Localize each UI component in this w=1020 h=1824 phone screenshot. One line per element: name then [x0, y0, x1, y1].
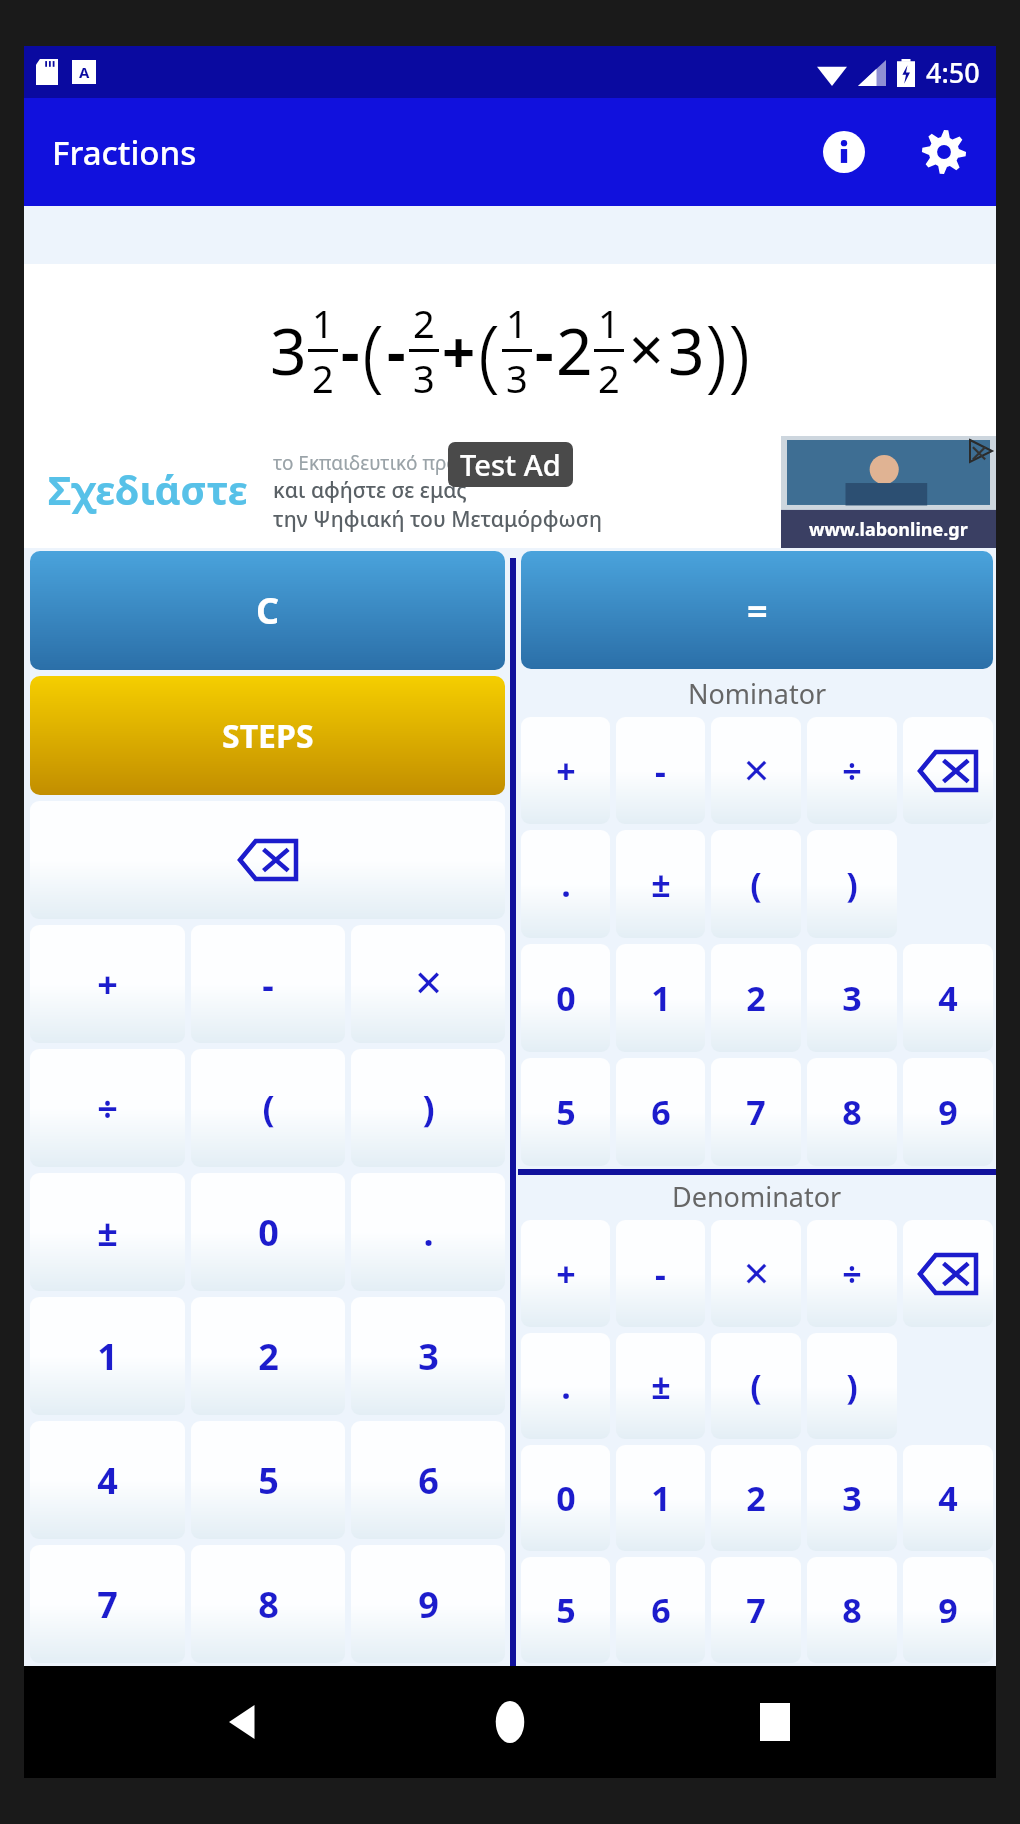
button[interactable]: Info [816, 124, 872, 180]
staticText: Denominator [672, 1178, 842, 1215]
button[interactable]: ÷ [30, 1049, 185, 1167]
staticText: C [256, 586, 280, 635]
button[interactable]: ( [711, 830, 801, 938]
button[interactable]: 1 [616, 1445, 705, 1551]
button[interactable]: 6 [351, 1421, 505, 1539]
button[interactable]: 0 [191, 1173, 345, 1291]
staticText: 5 [556, 1089, 576, 1135]
button[interactable]: 3 [807, 944, 897, 1052]
button[interactable]: 5 [191, 1421, 345, 1539]
button[interactable]: 1 [30, 1297, 185, 1415]
button[interactable]: 9 [351, 1545, 505, 1663]
button[interactable]: . [351, 1173, 505, 1291]
button[interactable]: ± [616, 1333, 705, 1439]
staticText: 2 [413, 297, 435, 349]
staticText: = [747, 586, 768, 635]
staticText: 9 [938, 1587, 958, 1633]
staticText: 7 [746, 1587, 766, 1633]
button[interactable]: 8 [807, 1557, 897, 1663]
button[interactable]: + [521, 717, 610, 824]
button[interactable]: 6 [616, 1557, 705, 1663]
button[interactable]: 6 [616, 1058, 705, 1166]
button[interactable]: 4 [903, 944, 993, 1052]
button[interactable]: 2 [711, 1445, 801, 1551]
staticText: ) [728, 296, 751, 405]
button[interactable]: ± [616, 830, 705, 938]
button[interactable]: Backspace [903, 717, 993, 824]
button[interactable]: ) [807, 1333, 897, 1439]
button[interactable]: 9 [903, 1557, 993, 1663]
staticText: 2 [598, 352, 620, 404]
staticText: 1 [651, 975, 671, 1021]
staticText: ✕ [742, 751, 771, 791]
staticText: 3 [668, 307, 705, 394]
staticText: ✕ [627, 324, 666, 378]
button[interactable]: ÷ [807, 717, 897, 824]
staticText: 3 [842, 1475, 862, 1521]
staticText: 5 [258, 1456, 279, 1505]
button[interactable]: Home [467, 1679, 553, 1765]
staticText: 6 [418, 1456, 439, 1505]
button[interactable]: ) [351, 1049, 505, 1167]
button[interactable]: 3 [807, 1445, 897, 1551]
staticText: 3 [842, 975, 862, 1021]
button[interactable]: 1 [616, 944, 705, 1052]
button[interactable]: 9 [903, 1058, 993, 1166]
button[interactable]: 5 [521, 1557, 610, 1663]
button[interactable]: 5 [521, 1058, 610, 1166]
button[interactable]: . [521, 1333, 610, 1439]
button[interactable]: Backspace [903, 1220, 993, 1327]
button[interactable]: Settings [916, 124, 972, 180]
button[interactable]: 4 [903, 1445, 993, 1551]
button[interactable]: C [30, 551, 505, 670]
button[interactable]: ) [807, 830, 897, 938]
button[interactable]: ( [191, 1049, 345, 1167]
button[interactable]: STEPS [30, 676, 505, 795]
staticText: - [262, 960, 274, 1009]
button[interactable]: 7 [711, 1557, 801, 1663]
button[interactable]: 4 [30, 1421, 185, 1539]
button[interactable]: 7 [30, 1545, 185, 1663]
button[interactable]: Recents [732, 1679, 818, 1765]
button[interactable]: 0 [521, 1445, 610, 1551]
button[interactable]: 2 [711, 944, 801, 1052]
button[interactable]: ✕ [711, 1220, 801, 1327]
button[interactable]: 0 [521, 944, 610, 1052]
button[interactable]: - [616, 717, 705, 824]
button[interactable]: 2 [191, 1297, 345, 1415]
button[interactable]: Back [203, 1679, 289, 1765]
button[interactable]: . [521, 830, 610, 938]
staticText: ÷ [842, 748, 862, 794]
button[interactable]: + [30, 925, 185, 1043]
button[interactable]: - [616, 1220, 705, 1327]
button[interactable]: ÷ [807, 1220, 897, 1327]
staticText: 0 [556, 1475, 576, 1521]
button[interactable]: = [521, 551, 993, 669]
staticText: 2 [746, 975, 766, 1021]
staticText: 3 [418, 1332, 439, 1381]
button[interactable]: ± [30, 1173, 185, 1291]
staticText: 2 [312, 352, 334, 404]
button[interactable]: ✕ [711, 717, 801, 824]
button[interactable]: + [521, 1220, 610, 1327]
button[interactable]: 8 [191, 1545, 345, 1663]
staticText: 2 [556, 307, 593, 394]
staticText: ÷ [842, 1251, 862, 1297]
staticText: ( [478, 296, 501, 405]
staticText: - [655, 1251, 666, 1297]
staticText: 4 [938, 975, 958, 1021]
staticText: ) [846, 861, 858, 907]
button[interactable]: 3 [351, 1297, 505, 1415]
button[interactable]: ( [711, 1333, 801, 1439]
staticText: . [423, 1208, 434, 1257]
button[interactable]: Backspace [30, 801, 505, 919]
button[interactable]: 7 [711, 1058, 801, 1166]
button[interactable]: ✕ [351, 925, 505, 1043]
staticText: 8 [842, 1089, 862, 1135]
staticText: 8 [258, 1580, 279, 1629]
staticText: www.labonline.gr [809, 517, 968, 542]
staticText: ✕ [413, 963, 444, 1005]
button[interactable]: 8 [807, 1058, 897, 1166]
button[interactable]: - [191, 925, 345, 1043]
staticText: STEPS [222, 714, 314, 758]
